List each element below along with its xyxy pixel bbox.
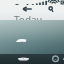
button[interactable]: Back — [10, 5, 44, 13]
button[interactable]: Home — [0, 54, 46, 64]
staticText: Coastal — [14, 32, 50, 42]
staticText: Today — [14, 13, 42, 20]
button[interactable]: Map — [46, 54, 64, 64]
staticText: 9:41 — [14, 0, 36, 5]
button[interactable]: Search — [48, 5, 54, 13]
